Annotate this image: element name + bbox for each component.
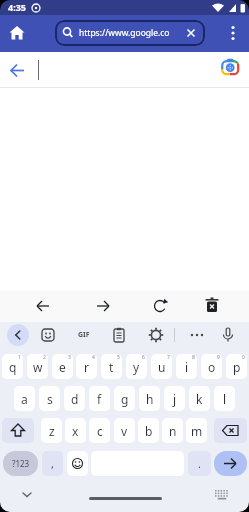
button[interactable] [2, 418, 34, 443]
staticText: a [21, 391, 28, 407]
button[interactable] [220, 58, 240, 78]
button[interactable] [217, 324, 239, 346]
button[interactable]: t [101, 354, 122, 379]
staticText: o [208, 359, 216, 375]
staticText: x [72, 423, 79, 439]
staticText: 2 [43, 354, 46, 361]
button[interactable] [211, 486, 233, 508]
staticText: h [146, 391, 154, 407]
staticText: q [9, 359, 17, 375]
button[interactable]: z [41, 418, 62, 443]
button[interactable] [145, 324, 167, 346]
button[interactable]: i [176, 354, 197, 379]
staticText: 0 [242, 354, 245, 361]
staticText: 8 [192, 354, 195, 361]
button[interactable]: p [226, 354, 247, 379]
button[interactable]: f [89, 386, 110, 411]
staticText: c [97, 423, 103, 439]
staticText: g [121, 391, 129, 407]
button[interactable]: k [189, 386, 210, 411]
staticText: t [109, 359, 114, 375]
button[interactable] [222, 22, 244, 44]
staticText: y [133, 359, 140, 375]
button[interactable] [214, 418, 247, 443]
staticText: . [198, 456, 201, 471]
staticText: z [49, 423, 55, 439]
button[interactable]: . [188, 451, 211, 476]
staticText: r [84, 359, 89, 375]
button[interactable]: a [14, 386, 35, 411]
button[interactable]: v [114, 418, 135, 443]
button[interactable] [149, 295, 171, 317]
staticText: s [47, 391, 53, 407]
button[interactable] [37, 324, 59, 346]
staticText: GIF [78, 330, 90, 340]
staticText: e [59, 359, 66, 375]
staticText: b [145, 423, 153, 439]
button[interactable]: l [214, 386, 235, 411]
button[interactable]: m [186, 418, 207, 443]
button[interactable] [181, 20, 205, 46]
staticText: d [71, 391, 79, 407]
button[interactable] [108, 324, 130, 346]
button[interactable] [6, 59, 29, 82]
button[interactable] [92, 295, 114, 317]
button[interactable] [186, 324, 208, 346]
button[interactable]: b [138, 418, 159, 443]
button[interactable]: q [2, 354, 23, 379]
button[interactable]: y [126, 354, 147, 379]
staticText: w [33, 359, 43, 375]
button[interactable]: j [164, 386, 185, 411]
staticText: i [185, 359, 189, 375]
staticText: p [233, 359, 241, 375]
button[interactable] [6, 22, 28, 44]
button[interactable] [7, 324, 29, 346]
staticText: l [223, 391, 227, 407]
staticText: j [173, 391, 177, 407]
button[interactable]: u [151, 354, 172, 379]
staticText: n [169, 423, 177, 439]
staticText: u [158, 359, 166, 375]
button[interactable] [32, 295, 54, 317]
button[interactable]: e [52, 354, 73, 379]
staticText: ?123 [12, 458, 30, 469]
staticText: 3 [68, 354, 71, 361]
button[interactable] [201, 295, 223, 317]
button[interactable]: c [89, 418, 110, 443]
staticText: 9 [217, 354, 220, 361]
button[interactable]: s [39, 386, 60, 411]
staticText: 1 [18, 354, 21, 361]
button[interactable]: o [201, 354, 222, 379]
button[interactable]: , [42, 451, 63, 476]
button[interactable] [16, 484, 38, 506]
button[interactable]: r [76, 354, 97, 379]
button[interactable] [67, 451, 88, 476]
button[interactable]: d [64, 386, 85, 411]
staticText: , [51, 456, 54, 471]
staticText: k [196, 391, 203, 407]
staticText: 4:35 [8, 1, 26, 13]
button[interactable]: GIF [73, 324, 95, 346]
staticText: 5 [117, 354, 120, 361]
button[interactable]: g [114, 386, 135, 411]
staticText: m [191, 423, 203, 439]
staticText: 4 [92, 354, 95, 361]
button[interactable]: n [162, 418, 183, 443]
staticText: 6 [142, 354, 145, 361]
button[interactable]: https://www.google.co [55, 20, 205, 46]
staticText: v [121, 423, 128, 439]
staticText: 7 [167, 354, 170, 361]
button[interactable] [214, 451, 247, 476]
button[interactable]: ?123 [3, 451, 38, 476]
staticText: https://www.google.co [79, 27, 179, 39]
button[interactable]: w [27, 354, 48, 379]
staticText: f [97, 391, 102, 407]
button[interactable]: x [65, 418, 86, 443]
button[interactable]: h [139, 386, 160, 411]
